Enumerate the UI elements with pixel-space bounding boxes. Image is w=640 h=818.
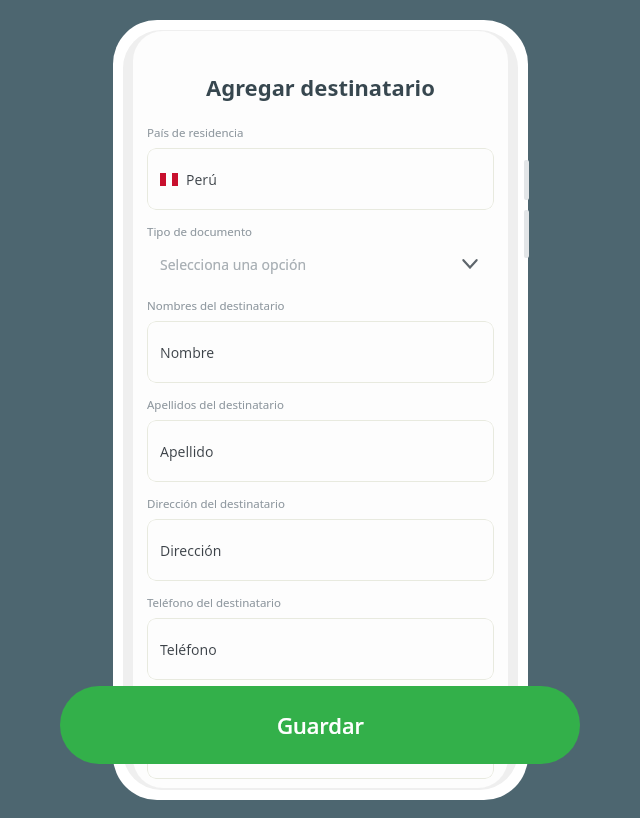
other: Abrir opciones [459,253,481,275]
button[interactable]: Apellido [147,420,494,482]
staticText: Apellidos del destinatario [147,397,284,413]
staticText: Apellido [160,442,214,461]
staticText: Selecciona una opción [160,255,307,274]
staticText: Tipo de documento [147,224,253,240]
button[interactable]: Perú [147,148,494,210]
staticText: País de residencia [147,125,244,141]
staticText: Guardar [277,710,364,740]
button[interactable]: Nombre [147,321,494,383]
staticText: Nombres del destinatario [147,298,285,314]
staticText: Teléfono del destinatario [147,595,282,611]
staticText: Teléfono [160,640,217,659]
button[interactable]: Selecciona una opción [147,240,494,288]
button[interactable]: Teléfono [147,618,494,680]
button[interactable]: Email [147,717,494,779]
staticText: Agregar destinatario [147,72,494,102]
staticText: Dirección [160,541,222,560]
staticText: Nombre [160,343,215,362]
staticText: Perú [186,170,217,189]
button[interactable]: Guardar [60,686,580,764]
button[interactable]: Dirección [147,519,494,581]
staticText: Dirección del destinatario [147,496,285,512]
